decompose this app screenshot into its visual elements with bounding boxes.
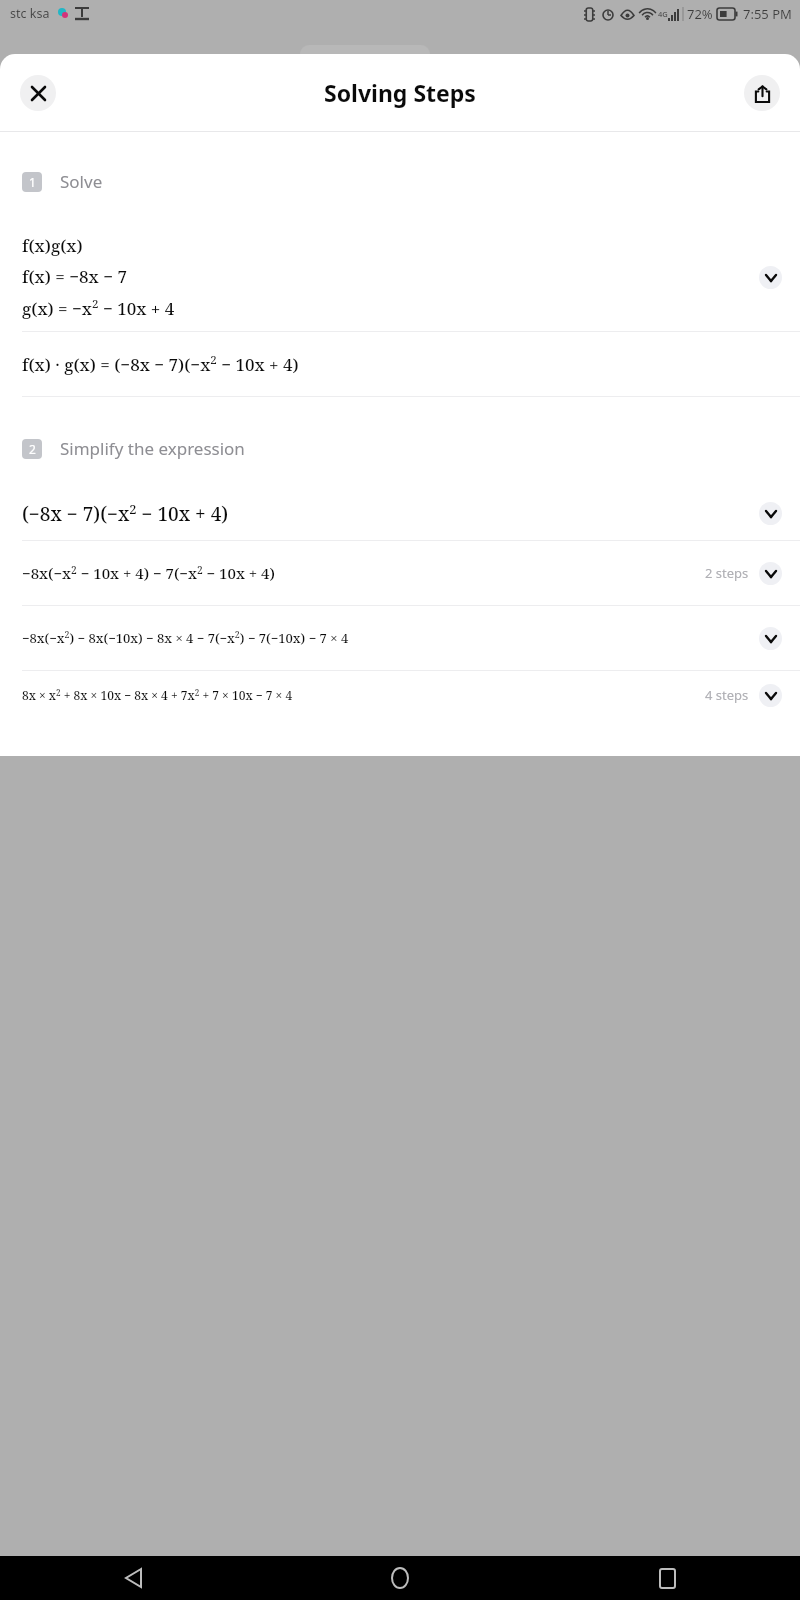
staticText: −8x(−x2 − 10x + 4) − 7(−x2 − 10x + 4) <box>22 563 275 584</box>
staticText: 8x × x2 + 8x × 10x − 8x × 4 + 7x2 + 7 × … <box>22 687 293 704</box>
staticText: f(x) · g(x) = (−8x − 7)(−x2 − 10x + 4) <box>22 352 299 376</box>
staticText: 2 <box>29 441 36 457</box>
staticText: g(x) = −x2 − 10x + 4 <box>22 296 175 320</box>
button[interactable]: 8x × x2 + 8x × 10x − 8x × 4 + 7x2 + 7 × … <box>0 671 800 719</box>
button[interactable]: 2 <box>22 437 800 460</box>
staticText: f(x) = −8x − 7 <box>22 265 127 288</box>
button[interactable]: Share <box>744 75 780 111</box>
button[interactable]: f(x) · g(x) = (−8x − 7)(−x2 − 10x + 4) <box>0 332 800 396</box>
staticText: (−8x − 7)(−x2 − 10x + 4) <box>22 500 229 526</box>
button[interactable]: f(x)g(x) <box>0 223 800 331</box>
staticText: 2 steps <box>705 564 749 582</box>
staticText: 4 steps <box>705 686 749 704</box>
staticText: 4G <box>658 9 668 19</box>
button[interactable]: Close <box>20 75 56 111</box>
button[interactable]: (−8x − 7)(−x2 − 10x + 4) <box>0 486 800 540</box>
staticText: Solve <box>60 170 103 193</box>
staticText: 7:55 PM <box>743 5 792 23</box>
staticText: 1 <box>29 174 36 190</box>
staticText: −8x(−x2) − 8x(−10x) − 8x × 4 − 7(−x2) − … <box>22 629 349 647</box>
button[interactable]: 1 <box>22 170 800 193</box>
staticText: f(x)g(x) <box>22 234 83 257</box>
button[interactable]: Home <box>380 1558 420 1598</box>
button[interactable]: Recents <box>647 1558 687 1598</box>
staticText: Solving Steps <box>324 77 476 108</box>
button[interactable]: −8x(−x2) − 8x(−10x) − 8x × 4 − 7(−x2) − … <box>0 606 800 670</box>
staticText: 72% <box>687 5 713 23</box>
staticText: Simplify the expression <box>60 437 245 460</box>
button[interactable]: Back <box>113 1558 153 1598</box>
staticText: stc ksa <box>10 5 50 22</box>
button[interactable]: −8x(−x2 − 10x + 4) − 7(−x2 − 10x + 4) <box>0 541 800 605</box>
